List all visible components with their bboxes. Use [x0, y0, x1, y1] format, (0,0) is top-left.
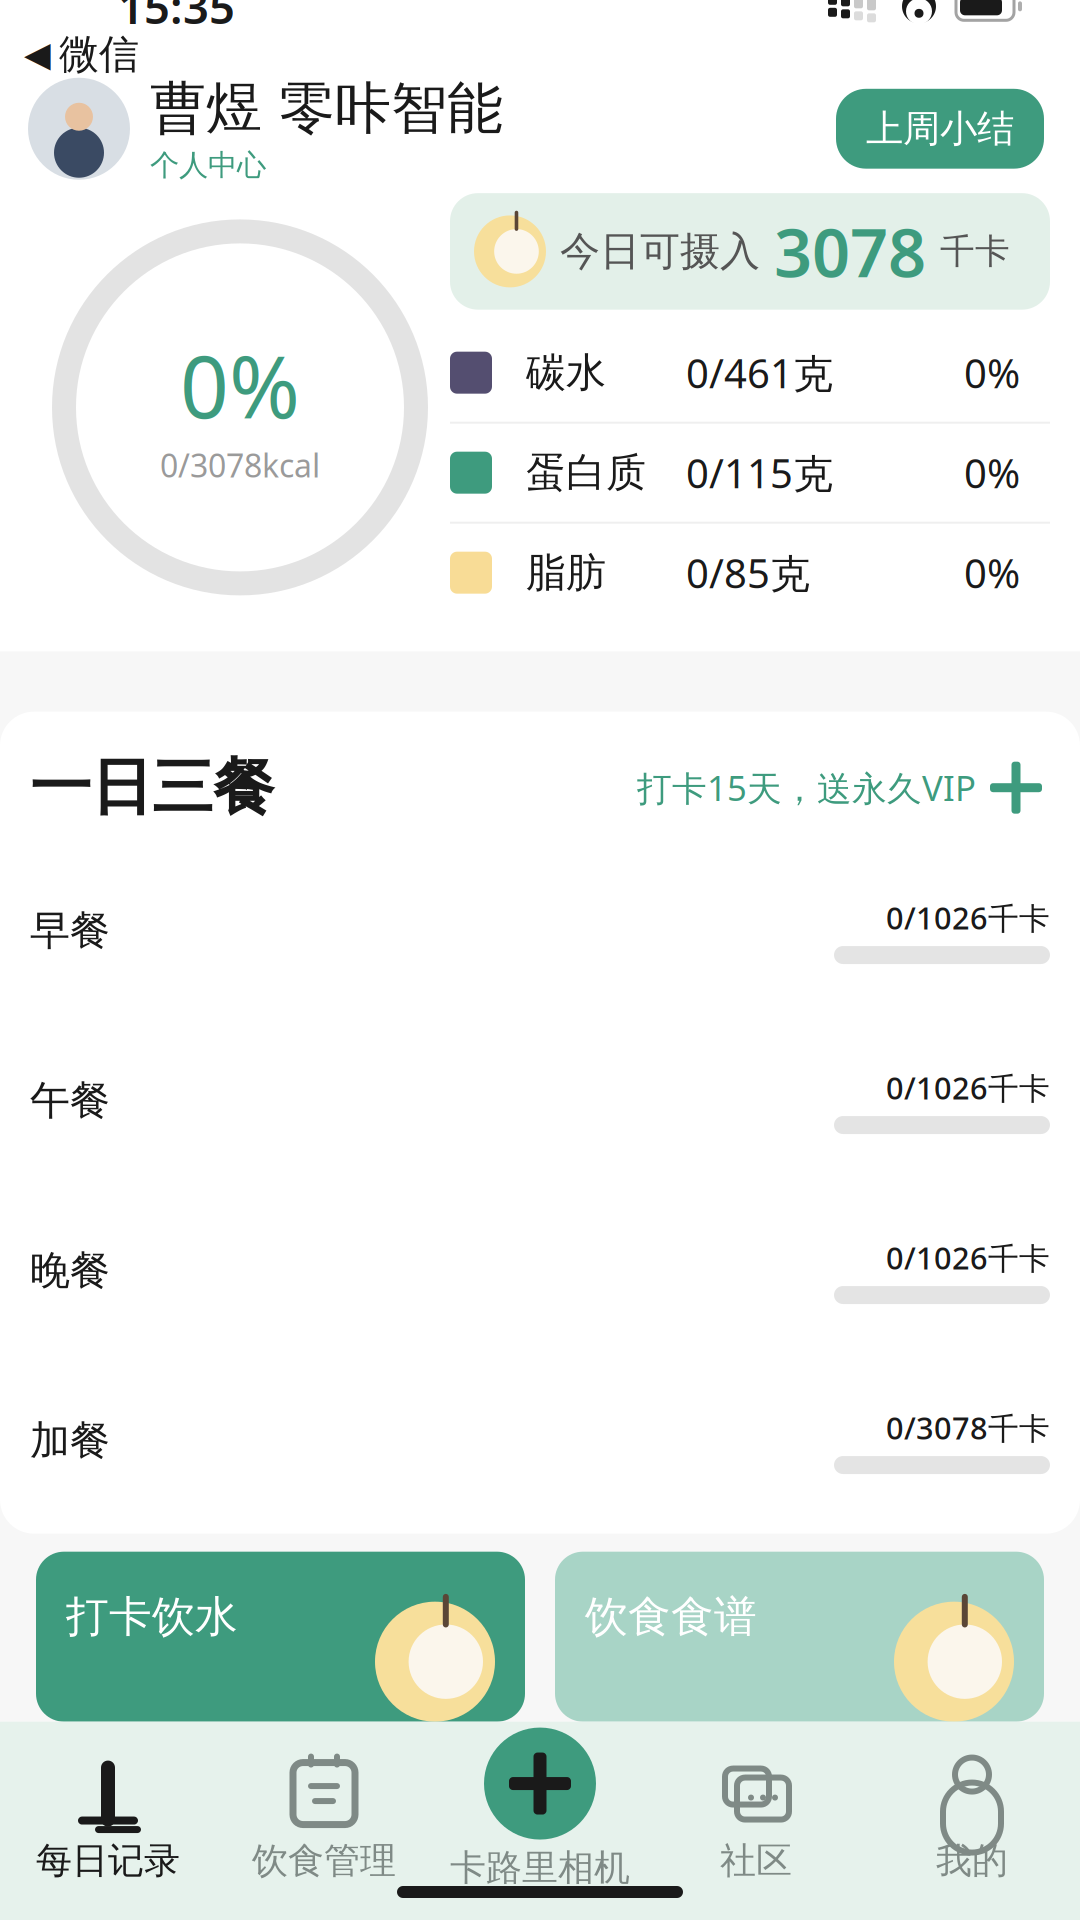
button[interactable]: 打卡饮水: [36, 1552, 525, 1722]
staticText: 15:35: [118, 0, 235, 36]
button[interactable]: 早餐: [0, 846, 1080, 1016]
staticText: 蛋白质: [526, 448, 646, 497]
staticText: 饮食食谱: [585, 1590, 757, 1643]
staticText: 社区: [720, 1839, 792, 1883]
button[interactable]: 添加记录: [976, 748, 1056, 828]
button[interactable]: 加餐: [0, 1356, 1080, 1526]
button[interactable]: 曹煜 零咔智能: [0, 74, 503, 183]
staticText: 曹煜 零咔智能: [150, 74, 503, 143]
button[interactable]: 晚餐: [0, 1186, 1080, 1356]
button[interactable]: 卡路里相机: [484, 1728, 596, 1840]
staticText: 千卡: [940, 230, 1010, 273]
staticText: 晚餐: [30, 1246, 110, 1295]
staticText: 饮食管理: [252, 1839, 396, 1883]
staticText: 0/1026千卡: [886, 1237, 1050, 1278]
button[interactable]: 午餐: [0, 1016, 1080, 1186]
button[interactable]: 返回微信: [0, 26, 139, 83]
staticText: 卡路里相机: [450, 1846, 630, 1890]
staticText: 0/85克: [686, 546, 810, 599]
staticText: 0/3078kcal: [160, 444, 320, 486]
staticText: 碳水: [526, 348, 606, 397]
staticText: 午餐: [30, 1076, 110, 1125]
staticText: 3078: [774, 207, 926, 296]
staticText: 微信: [59, 30, 139, 79]
button[interactable]: 社区: [648, 1741, 864, 1883]
staticText: 0%: [964, 546, 1020, 599]
staticText: 每日记录: [36, 1839, 180, 1883]
staticText: ◀: [24, 35, 51, 74]
button[interactable]: 上周小结: [836, 89, 1044, 169]
staticText: 0/1026千卡: [886, 897, 1050, 938]
staticText: 今日可摄入: [560, 227, 760, 276]
staticText: 我的: [936, 1839, 1008, 1883]
staticText: 脂肪: [526, 548, 606, 597]
staticText: 0/461克: [686, 346, 833, 399]
button[interactable]: 每日记录: [0, 1741, 216, 1883]
staticText: 个人中心: [150, 147, 266, 183]
staticText: 0/3078千卡: [886, 1407, 1050, 1448]
button[interactable]: 饮食食谱: [555, 1552, 1044, 1722]
staticText: 加餐: [30, 1416, 110, 1465]
staticText: 早餐: [30, 906, 110, 955]
staticText: 打卡15天，送永久VIP: [637, 765, 976, 811]
staticText: 0/115克: [686, 446, 833, 499]
staticText: 0%: [964, 346, 1020, 399]
button[interactable]: 我的: [864, 1741, 1080, 1883]
staticText: 0%: [964, 446, 1020, 499]
button[interactable]: 打卡15天，送永久VIP: [637, 757, 976, 819]
button[interactable]: 饮食管理: [216, 1741, 432, 1883]
staticText: 0/1026千卡: [886, 1067, 1050, 1108]
staticText: 一日三餐: [30, 750, 274, 825]
staticText: 上周小结: [866, 106, 1014, 152]
staticText: 打卡饮水: [66, 1590, 238, 1643]
staticText: 0%: [180, 328, 300, 442]
